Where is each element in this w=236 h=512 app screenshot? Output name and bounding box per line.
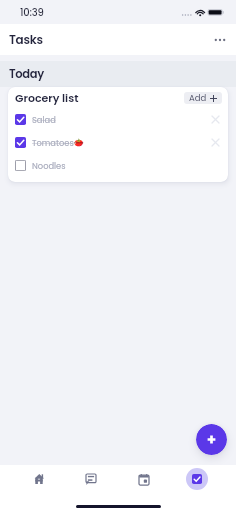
button[interactable]: Add task <box>196 424 227 455</box>
staticText: Tasks <box>9 31 43 48</box>
button[interactable]: Messages <box>65 465 117 492</box>
button[interactable]: More options <box>211 31 229 49</box>
staticText: Today <box>9 66 45 82</box>
staticText: Noodles <box>32 160 66 172</box>
button[interactable]: Tomatoes <box>8 131 228 154</box>
button[interactable]: Home <box>13 465 65 492</box>
staticText: 10:39 <box>20 5 44 19</box>
button[interactable]: Noodles <box>8 154 228 177</box>
staticText: 🍅 <box>74 138 84 147</box>
button[interactable]: Remove <box>209 113 222 126</box>
staticText: Salad <box>32 114 56 126</box>
button[interactable]: Calendar <box>117 465 170 492</box>
button[interactable]: Tasks <box>170 465 223 492</box>
button[interactable]: Remove <box>209 136 222 149</box>
staticText: Tomatoes <box>32 137 74 149</box>
staticText: Add <box>189 92 207 104</box>
button[interactable]: Salad <box>8 108 228 131</box>
staticText: Grocery list <box>15 90 79 105</box>
button[interactable]: Add <box>184 92 222 104</box>
